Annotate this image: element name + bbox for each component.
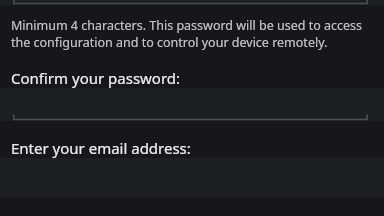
button[interactable]: Password input field	[0, 0, 384, 5]
staticText: Minimum 4 characters. This password will…	[11, 17, 370, 50]
button[interactable]: Confirm password input field	[0, 88, 384, 121]
staticText: Confirm your password:	[11, 68, 370, 88]
staticText: Enter your email address:	[11, 138, 370, 158]
